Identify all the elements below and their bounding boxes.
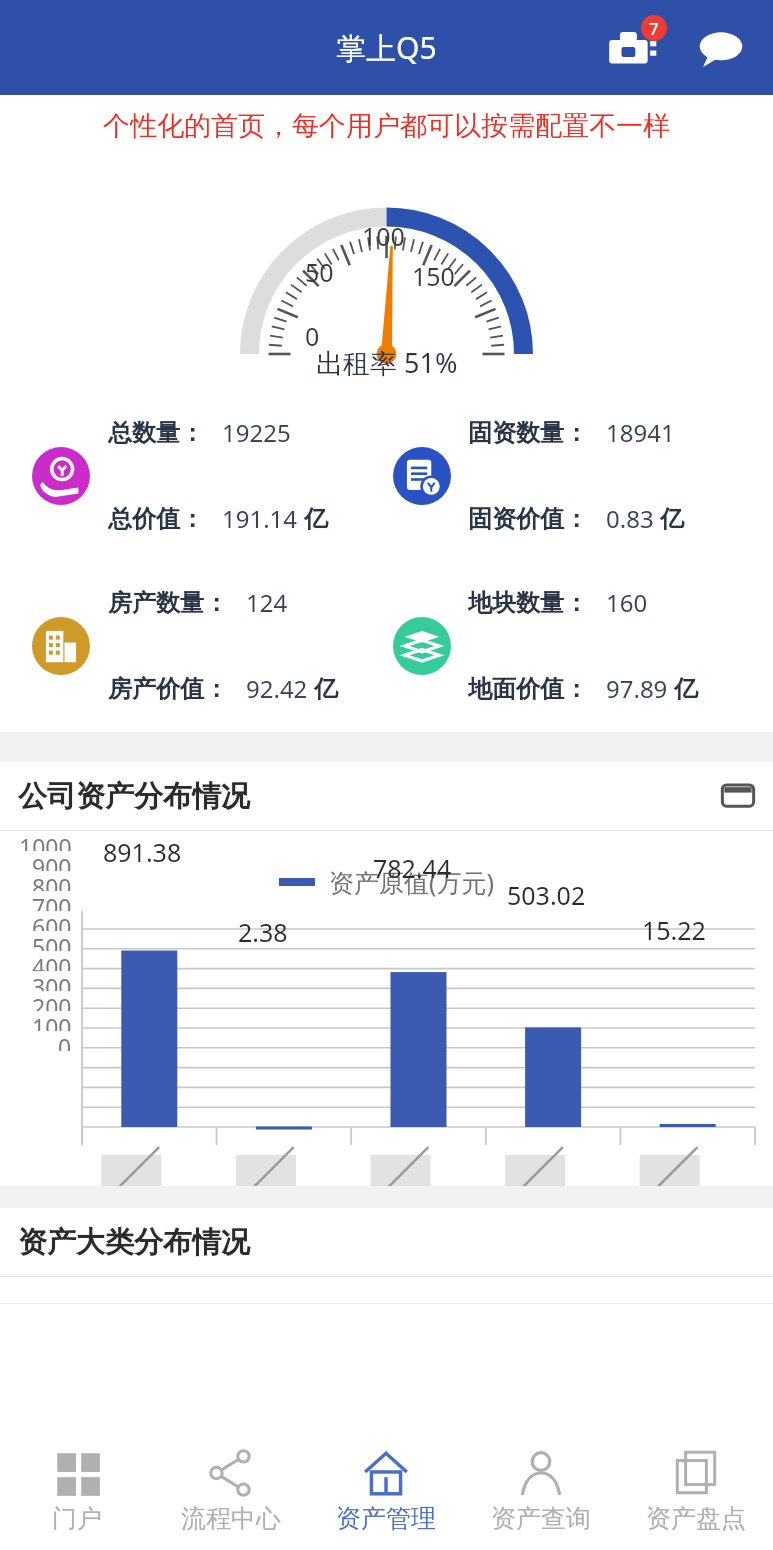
staticText: 房产价值：	[108, 674, 228, 704]
staticText: 固资数量：	[468, 418, 588, 448]
staticText: 124	[246, 586, 288, 619]
button[interactable]: 流程中心	[154, 1430, 308, 1550]
staticText: 资产原值(万元)	[329, 865, 495, 899]
staticText: 100	[362, 219, 405, 253]
staticText: 资产大类分布情况	[18, 1224, 250, 1261]
staticText: 掌上Q5	[336, 27, 437, 68]
staticText: 房产数量：	[108, 588, 228, 618]
staticText: 0.83	[606, 502, 654, 535]
staticText: 19225	[222, 416, 291, 449]
button[interactable]: 公司资产分布情况	[0, 762, 773, 830]
staticText: 50	[305, 255, 334, 289]
button[interactable]: 消息	[693, 20, 749, 76]
staticText: 地块数量：	[468, 588, 588, 618]
staticText: 782.44	[373, 851, 452, 885]
staticText: 门户	[52, 1503, 102, 1534]
staticText: 97.89	[606, 672, 668, 705]
staticText: 700	[32, 891, 72, 911]
staticText: 800	[32, 871, 72, 891]
staticText: 7	[649, 17, 659, 40]
staticText: 地面价值：	[468, 674, 588, 704]
staticText: 0	[58, 1031, 72, 1051]
staticText: 600	[32, 911, 72, 931]
staticText: 400	[32, 951, 72, 971]
staticText: 900	[32, 851, 72, 871]
button[interactable]: 工作台	[603, 17, 665, 79]
staticText: 2.38	[238, 915, 288, 949]
staticText: 资产管理	[336, 1503, 436, 1534]
staticText: 资产查询	[491, 1503, 591, 1534]
staticText: 流程中心	[181, 1503, 281, 1534]
staticText: 0	[305, 319, 320, 353]
staticText: 总价值：	[108, 504, 204, 534]
staticText: 15.22	[642, 913, 706, 947]
staticText: 500	[32, 931, 72, 951]
staticText: 200	[32, 991, 72, 1011]
button[interactable]: 门户	[0, 1430, 154, 1550]
staticText: 资产盘点	[646, 1503, 746, 1534]
staticText: 个性化的首页，每个用户都可以按需配置不一样	[103, 109, 670, 143]
staticText: 150	[412, 259, 455, 293]
staticText: 亿	[314, 674, 338, 704]
staticText: 891.38	[103, 835, 182, 869]
staticText: 100	[32, 1011, 72, 1031]
staticText: 亿	[304, 504, 328, 534]
button[interactable]: 资产大类分布情况	[0, 1208, 773, 1276]
staticText: 总数量：	[108, 418, 204, 448]
button[interactable]: 资产查询	[463, 1430, 618, 1550]
staticText: 191.14	[222, 502, 298, 535]
button[interactable]: 资产管理	[308, 1430, 463, 1550]
staticText: 160	[606, 586, 648, 619]
staticText: 300	[32, 971, 72, 991]
staticText: 92.42	[246, 672, 308, 705]
staticText: 503.02	[507, 878, 586, 912]
staticText: 亿	[660, 504, 684, 534]
staticText: 固资价值：	[468, 504, 588, 534]
staticText: 18941	[606, 416, 675, 449]
other: 展开	[721, 779, 755, 813]
staticText: 1000	[19, 831, 72, 851]
staticText: 公司资产分布情况	[18, 778, 250, 815]
staticText: 出租率 51%	[316, 344, 458, 381]
button[interactable]: 资产盘点	[618, 1430, 773, 1550]
staticText: 亿	[674, 674, 698, 704]
